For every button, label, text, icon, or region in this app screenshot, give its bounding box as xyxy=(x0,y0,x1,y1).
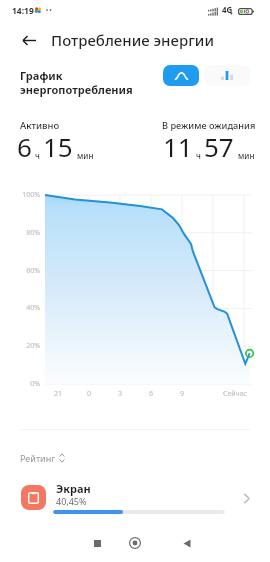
staticText: 6 xyxy=(17,129,32,164)
staticText: 20% xyxy=(0,341,40,351)
staticText: 100% xyxy=(0,190,40,200)
staticText: мин xyxy=(77,150,94,161)
staticText: 57 xyxy=(204,129,234,164)
staticText: ч xyxy=(196,150,201,161)
staticText: 80% xyxy=(0,228,40,238)
staticText: 0% xyxy=(0,379,40,389)
staticText: 60% xyxy=(0,266,40,276)
staticText: 15 xyxy=(43,129,73,164)
staticText: 40,45% xyxy=(56,495,87,507)
staticText: 4G xyxy=(222,4,233,15)
staticText: 11 xyxy=(163,129,193,164)
staticText: Рейтинг xyxy=(20,452,56,464)
staticText: Потребление энергии xyxy=(51,30,214,50)
button[interactable]: Home xyxy=(120,528,150,558)
staticText: В режиме ожидания xyxy=(162,119,256,132)
staticText: ч xyxy=(35,150,40,161)
button[interactable]: Line chart xyxy=(163,65,199,86)
staticText: График энергопотребления xyxy=(20,68,133,97)
button[interactable]: Экран xyxy=(0,482,270,522)
staticText: Активно xyxy=(20,119,60,132)
button[interactable]: Recents xyxy=(82,528,112,558)
staticText: 3 xyxy=(100,389,140,399)
staticText: 14:19 xyxy=(12,5,34,17)
staticText: Экран xyxy=(56,481,91,496)
button[interactable]: Bar chart xyxy=(204,65,250,86)
staticText: 0 xyxy=(69,389,109,399)
staticText: мин xyxy=(238,150,255,161)
button[interactable]: Back xyxy=(15,26,43,54)
staticText: 40% xyxy=(0,303,40,313)
button[interactable]: Back xyxy=(172,528,202,558)
staticText: 21 xyxy=(38,389,78,399)
staticText: 9 xyxy=(162,389,202,399)
staticText: 6 xyxy=(131,389,171,399)
button[interactable]: Рейтинг xyxy=(20,452,65,464)
staticText: Сейчас xyxy=(215,389,255,399)
